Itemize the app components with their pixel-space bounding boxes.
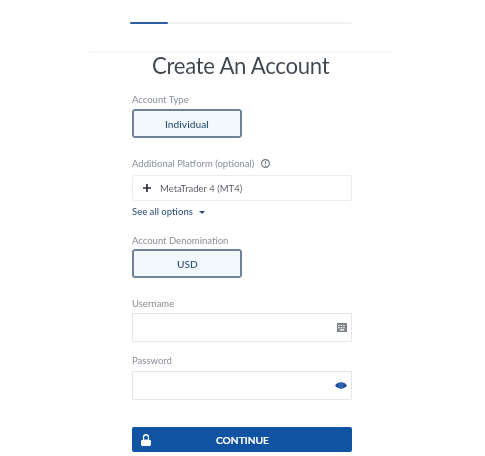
staticText: Username	[132, 298, 175, 309]
staticText: MetaTrader 4 (MT4)	[160, 183, 243, 194]
staticText: See all options	[132, 206, 193, 217]
staticText: Create An Account	[152, 52, 330, 79]
button[interactable]: Show password	[132, 371, 352, 400]
staticText: CONTINUE	[216, 434, 269, 446]
button[interactable]: USD	[132, 249, 242, 278]
button[interactable]: Keyboard	[132, 313, 352, 342]
staticText: USD	[177, 258, 198, 270]
other: Keyboard	[337, 323, 347, 332]
staticText: Account Denomination	[132, 235, 229, 246]
staticText: Additional Platform (optional)	[132, 158, 255, 169]
staticText: Account Type	[132, 94, 189, 105]
other: Info	[261, 159, 270, 168]
staticText: Individual	[165, 118, 209, 130]
staticText: Password	[132, 355, 172, 366]
button[interactable]: MetaTrader 4 (MT4)	[132, 175, 352, 201]
other: Show password	[335, 382, 347, 389]
button[interactable]: Individual	[132, 109, 242, 138]
button[interactable]: CONTINUE	[132, 427, 352, 452]
button[interactable]: See all options	[132, 206, 205, 217]
